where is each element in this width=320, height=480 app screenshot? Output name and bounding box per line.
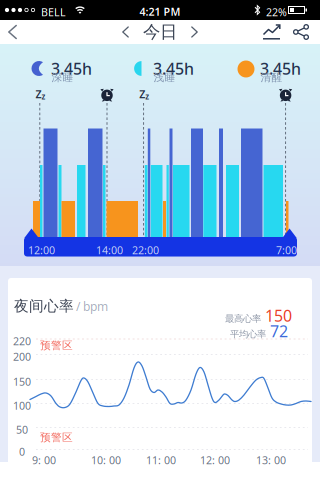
staticText: 深睡 — [51, 71, 73, 84]
staticText: 50 — [16, 422, 28, 437]
staticText: 12:00 — [28, 243, 55, 257]
button[interactable]: Back — [0, 25, 17, 39]
button[interactable]: Trends — [258, 24, 286, 40]
staticText: 0 — [19, 444, 25, 459]
staticText: 72 — [270, 320, 288, 342]
staticText: 今日 — [143, 21, 177, 43]
staticText: 最高心率 — [225, 313, 261, 324]
staticText: Z — [35, 87, 41, 101]
staticText: z — [41, 91, 45, 102]
staticText: 3.45h — [51, 58, 92, 79]
staticText: 清醒 — [260, 71, 282, 84]
button[interactable]: Next day — [191, 26, 198, 37]
staticText: 13: 00 — [256, 453, 286, 467]
staticText: 22% — [266, 5, 287, 19]
staticText: 200 — [13, 349, 31, 364]
staticText: 3.45h — [153, 58, 194, 79]
staticText: 4:21 PM — [139, 4, 180, 19]
staticText: 3.45h — [260, 58, 301, 79]
staticText: 预警区 — [40, 339, 73, 352]
staticText: / bpm — [76, 298, 108, 314]
staticText: z — [145, 91, 149, 102]
button[interactable]: Previous day — [122, 26, 129, 37]
staticText: 150 — [13, 374, 31, 389]
staticText: 平均心率 — [230, 328, 266, 340]
staticText: 7:00 — [276, 243, 297, 257]
staticText: 9: 00 — [32, 453, 56, 467]
staticText: 220 — [13, 334, 31, 348]
staticText: Z — [139, 87, 145, 101]
button[interactable]: Share — [286, 24, 320, 40]
staticText: 预警区 — [40, 431, 73, 444]
staticText: 14:00 — [96, 243, 123, 257]
staticText: 11: 00 — [146, 453, 176, 467]
staticText: 100 — [13, 398, 31, 413]
staticText: 夜间心率 — [14, 297, 74, 315]
staticText: BELL — [41, 5, 66, 19]
staticText: 22:00 — [132, 243, 159, 257]
staticText: 浅睡 — [153, 71, 175, 84]
staticText: 10: 00 — [91, 453, 121, 467]
staticText: 150 — [265, 305, 292, 326]
staticText: 12: 00 — [200, 453, 230, 467]
